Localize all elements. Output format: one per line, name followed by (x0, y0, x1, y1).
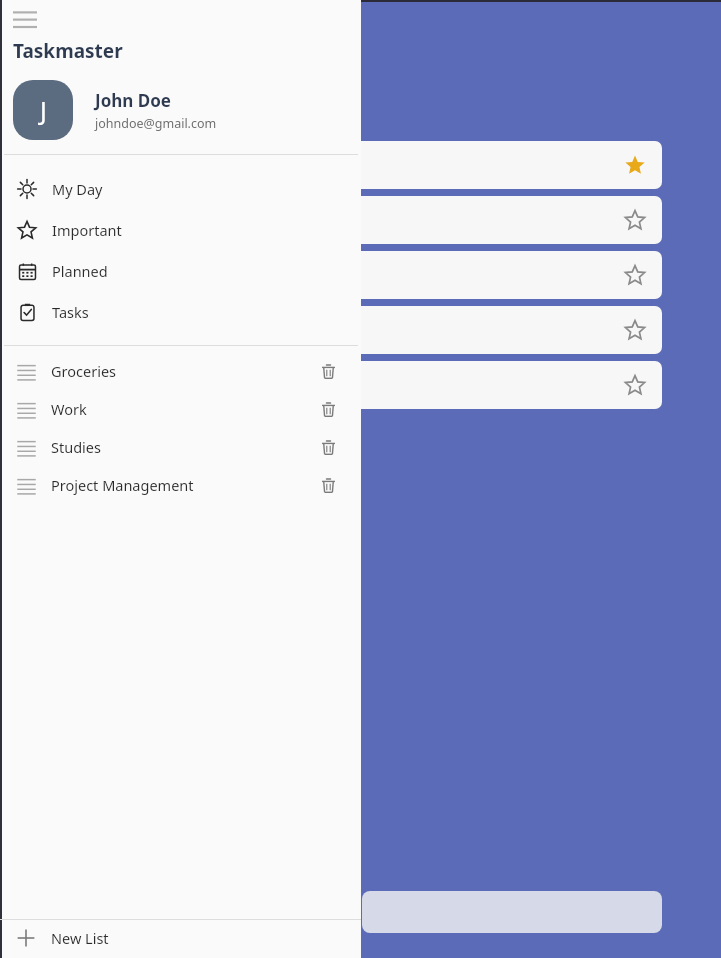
button[interactable]: My Day (0, 168, 361, 209)
button[interactable]: Star task (0, 251, 662, 299)
button[interactable]: Menu (13, 10, 37, 30)
button[interactable]: Important (0, 209, 361, 250)
button[interactable]: Delete list Studies (315, 434, 341, 460)
button[interactable]: Studies (0, 428, 361, 466)
button[interactable]: Add a task (362, 891, 662, 933)
staticText: Groceries (51, 361, 117, 381)
button[interactable]: Star task (621, 316, 649, 344)
staticText: Important (52, 220, 122, 240)
button[interactable]: Star task (0, 196, 662, 244)
staticText: Planned (52, 261, 108, 281)
button[interactable]: Star task (0, 306, 662, 354)
staticText: New List (51, 928, 109, 948)
button[interactable]: Delete list Project Management (315, 472, 341, 498)
staticText: My Day (52, 179, 103, 199)
button[interactable]: Project Management (0, 466, 361, 504)
button[interactable]: Groceries (0, 352, 361, 390)
button[interactable]: J (0, 78, 361, 154)
button[interactable]: New List (0, 920, 361, 956)
staticText: J (40, 93, 47, 127)
button[interactable]: Star task (621, 261, 649, 289)
staticText: Work (51, 399, 87, 419)
button[interactable]: Delete list Work (315, 396, 341, 422)
staticText: Studies (51, 437, 101, 457)
button[interactable]: Star task (621, 206, 649, 234)
staticText: Tasks (52, 302, 89, 322)
staticText: Taskmaster (13, 38, 123, 64)
staticText: Project Management (51, 475, 194, 495)
button[interactable]: Planned (0, 250, 361, 291)
button[interactable]: Delete list Groceries (315, 358, 341, 384)
button[interactable]: Star task (621, 371, 649, 399)
button[interactable]: Tasks (0, 291, 361, 332)
button[interactable]: Star task (0, 361, 662, 409)
button[interactable]: Unstar task (621, 151, 649, 179)
button[interactable]: Unstar task (0, 141, 662, 189)
button[interactable]: Work (0, 390, 361, 428)
staticText: John Doe (95, 89, 171, 112)
staticText: johndoe@gmail.com (95, 115, 217, 132)
